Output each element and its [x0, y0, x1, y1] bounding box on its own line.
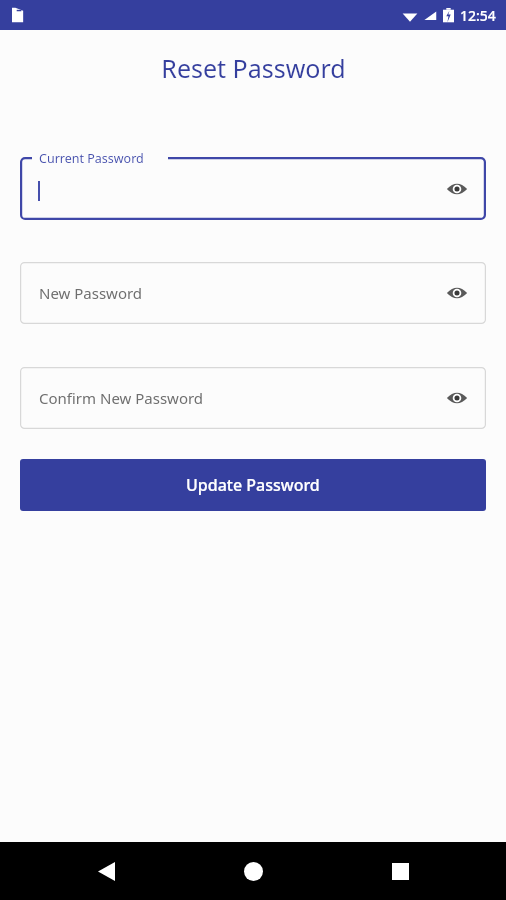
button[interactable]: Home	[233, 851, 273, 891]
staticText: 12:54	[460, 6, 496, 25]
button[interactable]: New Password	[20, 262, 486, 324]
button[interactable]: Show password	[442, 278, 472, 308]
button[interactable]: Confirm New Password	[20, 367, 486, 429]
staticText: Reset Password	[161, 51, 346, 85]
staticText: New Password	[39, 283, 143, 303]
staticText: Update Password	[186, 474, 320, 496]
button[interactable]: Back	[86, 851, 126, 891]
button[interactable]: Show password	[442, 383, 472, 413]
button[interactable]: Update Password	[20, 459, 486, 511]
button[interactable]: Show password	[442, 174, 472, 204]
staticText: Current Password	[39, 150, 144, 167]
button[interactable]: Recent apps	[380, 851, 420, 891]
staticText: Confirm New Password	[39, 388, 204, 408]
button[interactable]: Current Password	[20, 157, 486, 220]
